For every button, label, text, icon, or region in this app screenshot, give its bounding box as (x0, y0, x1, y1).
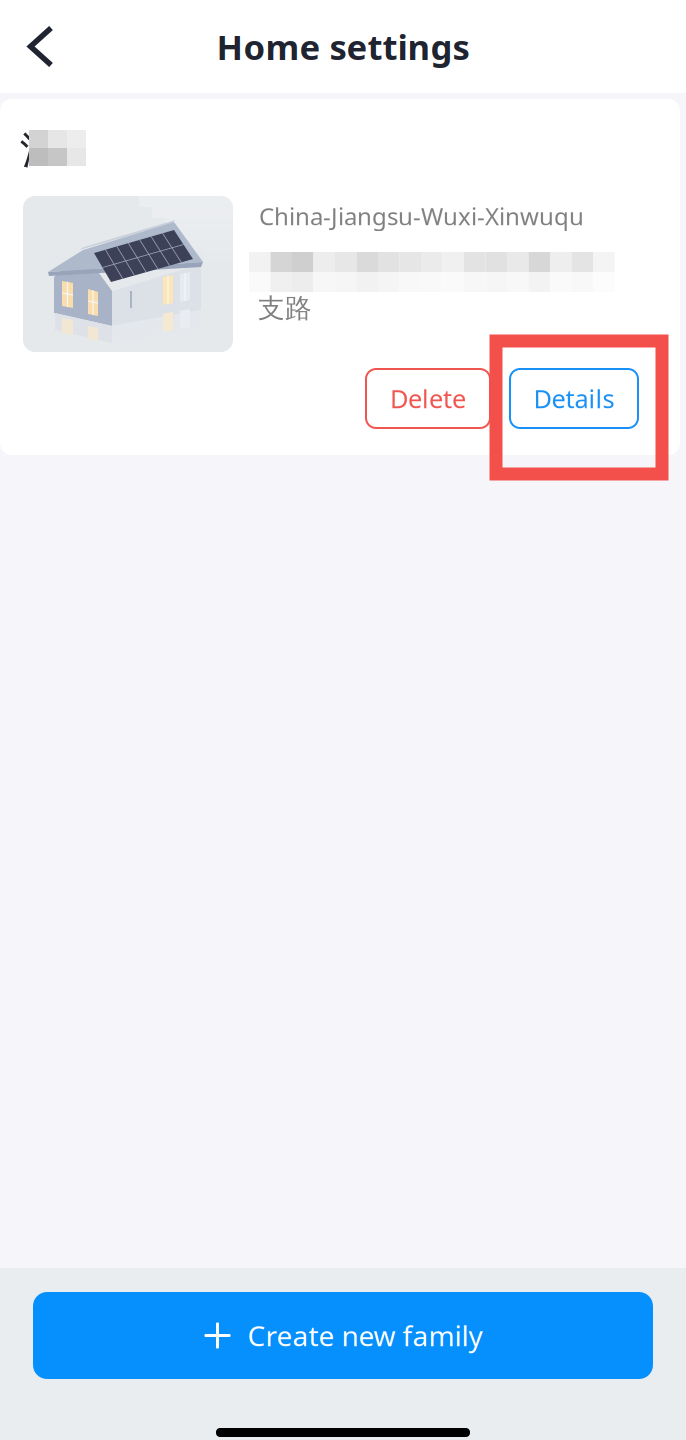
staticText: China-Jiangsu-Wuxi-Xinwuqu (259, 200, 584, 232)
staticText: 支路 (258, 292, 312, 325)
staticText: Delete (390, 382, 466, 415)
staticText: Home settings (216, 23, 469, 69)
button[interactable]: Details (510, 369, 638, 428)
button[interactable]: Create new family (33, 1292, 653, 1379)
button[interactable]: Delete (366, 369, 490, 428)
staticText: Details (533, 382, 614, 415)
staticText: 氵 (20, 129, 56, 173)
staticText: Create new family (247, 1317, 482, 1354)
button[interactable]: Back (10, 12, 72, 80)
